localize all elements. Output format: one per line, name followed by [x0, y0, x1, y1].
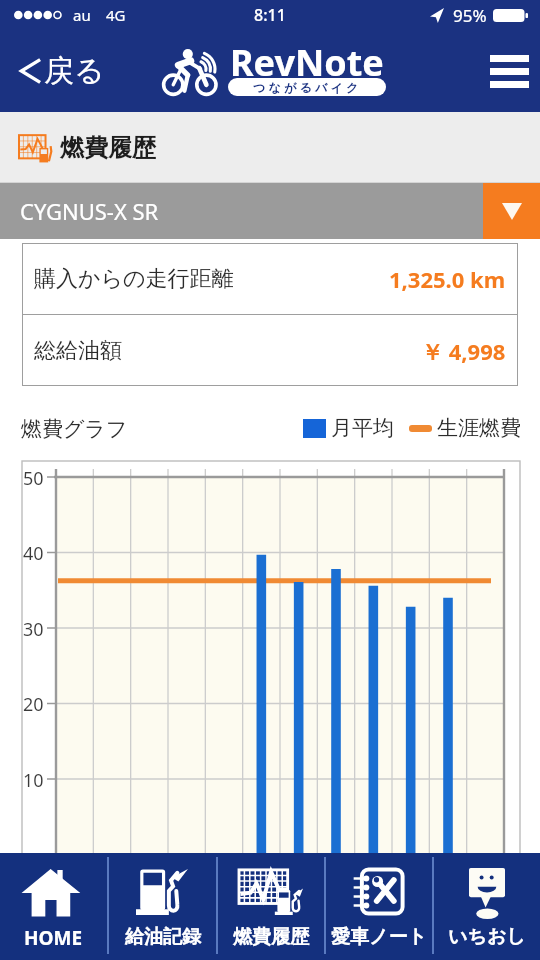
staticText: 燃費グラフ — [21, 416, 128, 442]
button[interactable]: 燃費履歴 — [218, 853, 324, 960]
button[interactable]: いちおし — [434, 853, 540, 960]
staticText: ￥ 4,998 — [421, 336, 506, 366]
staticText: 40 — [23, 541, 44, 566]
staticText: 月平均 — [331, 415, 394, 441]
staticText: 10 — [23, 768, 44, 793]
staticText: 燃費履歴 — [233, 925, 309, 949]
staticText: CYGNUS-X SR — [20, 196, 159, 226]
staticText: 4G — [106, 5, 126, 25]
staticText: 8:11 — [254, 4, 286, 26]
staticText: 1,325.0 km — [389, 264, 506, 294]
staticText: au — [73, 5, 91, 25]
button[interactable]: 購入からの走行距離 — [22, 243, 518, 314]
button[interactable]: Select vehicle — [483, 183, 540, 239]
staticText: 生涯燃費 — [437, 415, 521, 441]
staticText: 給油記録 — [125, 925, 201, 949]
button[interactable]: 総給油額 — [22, 315, 518, 386]
staticText: 燃費履歴 — [60, 133, 156, 163]
button[interactable]: 給油記録 — [109, 853, 216, 960]
staticText: 30 — [23, 617, 44, 642]
staticText: HOME — [24, 925, 83, 951]
button[interactable]: HOME — [0, 853, 107, 960]
staticText: 95% — [453, 4, 487, 27]
staticText: 総給油額 — [34, 337, 122, 365]
staticText: つながるバイク — [253, 80, 362, 95]
staticText: 50 — [23, 466, 44, 491]
staticText: 愛車ノート — [331, 925, 427, 949]
staticText: 戻る — [44, 52, 105, 90]
button[interactable]: 愛車ノート — [326, 853, 432, 960]
staticText: RevNote — [230, 38, 384, 87]
staticText: 購入からの走行距離 — [34, 265, 234, 293]
button[interactable]: Menu — [474, 43, 540, 100]
staticText: 20 — [23, 692, 44, 717]
button[interactable]: 戻る — [0, 40, 113, 102]
staticText: いちおし — [448, 925, 526, 949]
